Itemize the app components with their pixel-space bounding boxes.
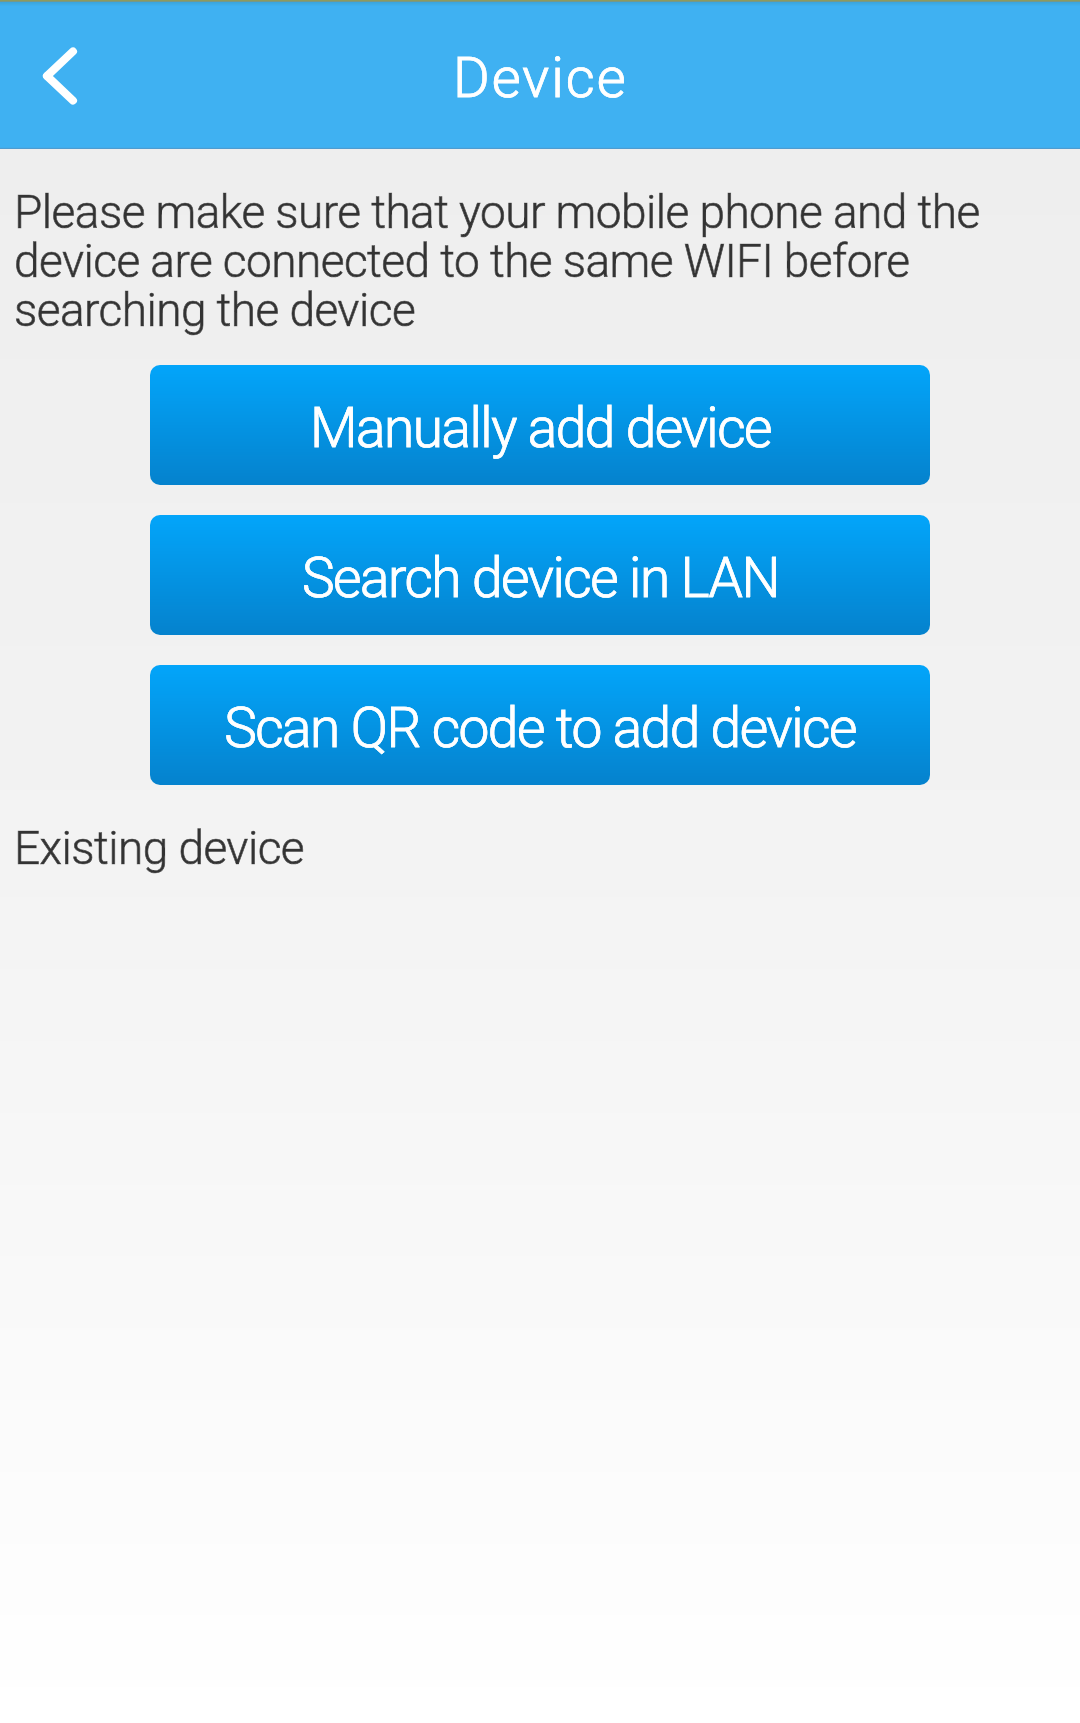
staticText: Search device in LAN: [302, 546, 779, 610]
staticText: Device: [453, 45, 628, 111]
staticText: Please make sure that your mobile phone …: [14, 185, 1046, 337]
staticText: Existing device: [14, 821, 305, 875]
button[interactable]: Search device in LAN: [150, 515, 930, 635]
staticText: Device: [453, 45, 628, 111]
staticText: Manually add device: [310, 396, 771, 460]
button[interactable]: Scan QR code to add device: [150, 665, 930, 785]
staticText: Please make sure that your mobile phone …: [14, 185, 1046, 337]
staticText: Manually add device: [310, 396, 771, 460]
button[interactable]: Back: [0, 2, 120, 149]
staticText: Search device in LAN: [302, 546, 779, 610]
staticText: Scan QR code to add device: [224, 696, 856, 760]
staticText: Scan QR code to add device: [224, 696, 856, 760]
staticText: Existing device: [14, 821, 305, 875]
button[interactable]: Manually add device: [150, 365, 930, 485]
